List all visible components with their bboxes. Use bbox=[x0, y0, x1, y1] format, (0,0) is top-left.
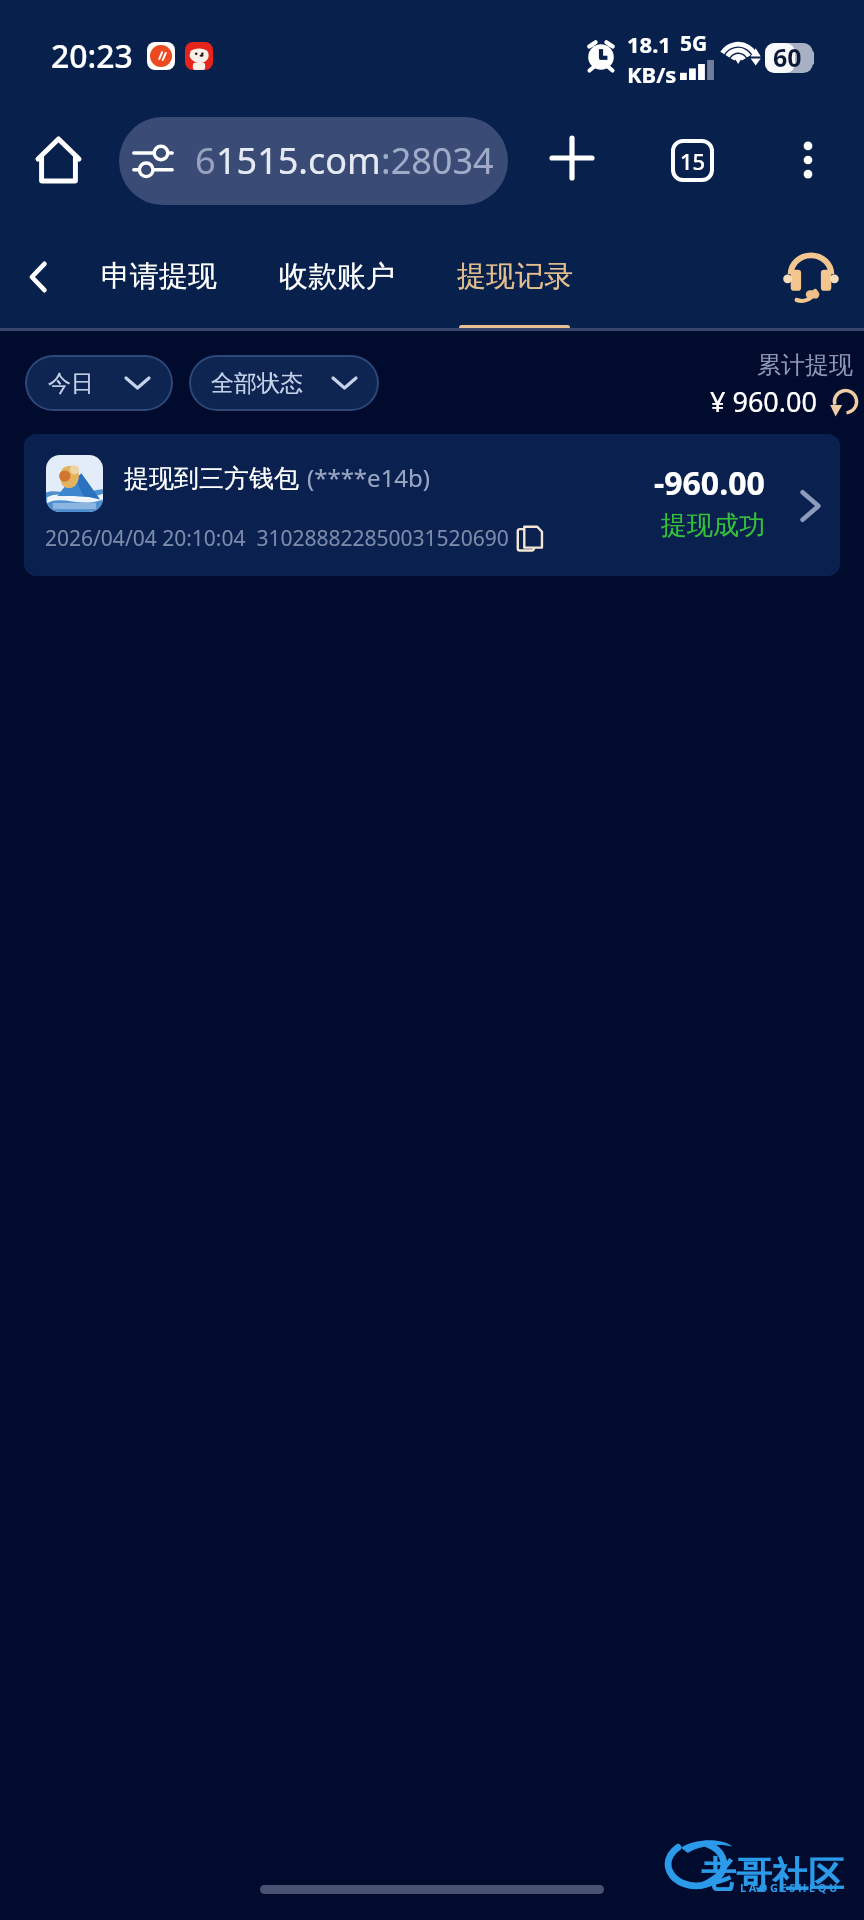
staticText: 60 bbox=[773, 40, 802, 74]
staticText: 累计提现 bbox=[757, 350, 853, 380]
staticText: 5G bbox=[680, 29, 708, 58]
staticText: 老哥社区 bbox=[700, 1852, 844, 1897]
button[interactable]: More options bbox=[776, 128, 840, 192]
button[interactable]: 今日 bbox=[25, 355, 173, 411]
button[interactable]: 提现记录 bbox=[445, 220, 585, 332]
button[interactable]: 收款账户 bbox=[267, 220, 407, 332]
staticText: -960.00 bbox=[654, 461, 765, 505]
button[interactable]: Home bbox=[24, 126, 92, 194]
staticText: 申请提现 bbox=[101, 258, 217, 295]
button[interactable]: Tabs bbox=[660, 128, 724, 192]
button[interactable]: Refresh bbox=[828, 386, 860, 418]
staticText: 提现成功 bbox=[661, 509, 765, 542]
button[interactable]: 申请提现 bbox=[89, 220, 229, 332]
staticText: 2026/04/04 20:10:04 31028882285003152069… bbox=[45, 524, 509, 553]
staticText: 收款账户 bbox=[279, 258, 395, 295]
staticText: 今日 bbox=[48, 369, 94, 398]
staticText: 1515.com bbox=[216, 136, 381, 185]
staticText: :28034 bbox=[381, 136, 494, 185]
staticText: 全部状态 bbox=[211, 369, 303, 398]
staticText: (****e14b) bbox=[307, 461, 431, 494]
button[interactable]: Copy bbox=[516, 525, 544, 553]
button[interactable]: 提现到三方钱包 bbox=[24, 434, 840, 576]
staticText: ¥ 960.00 bbox=[710, 383, 817, 420]
staticText: LAOGESHEQU bbox=[740, 1880, 841, 1895]
staticText: 18.1 bbox=[627, 29, 671, 59]
staticText: 15 bbox=[680, 146, 706, 176]
button[interactable]: Customer service bbox=[776, 242, 846, 312]
button[interactable]: Back bbox=[6, 245, 70, 309]
button[interactable]: 全部状态 bbox=[189, 355, 379, 411]
button[interactable]: 6 bbox=[119, 117, 508, 205]
staticText: 20:23 bbox=[51, 34, 133, 78]
staticText: 提现到三方钱包 bbox=[124, 463, 299, 494]
staticText: 6 bbox=[195, 136, 216, 185]
staticText: KB/s bbox=[627, 59, 677, 89]
button[interactable]: New tab bbox=[540, 126, 604, 190]
staticText: 提现记录 bbox=[457, 258, 573, 295]
